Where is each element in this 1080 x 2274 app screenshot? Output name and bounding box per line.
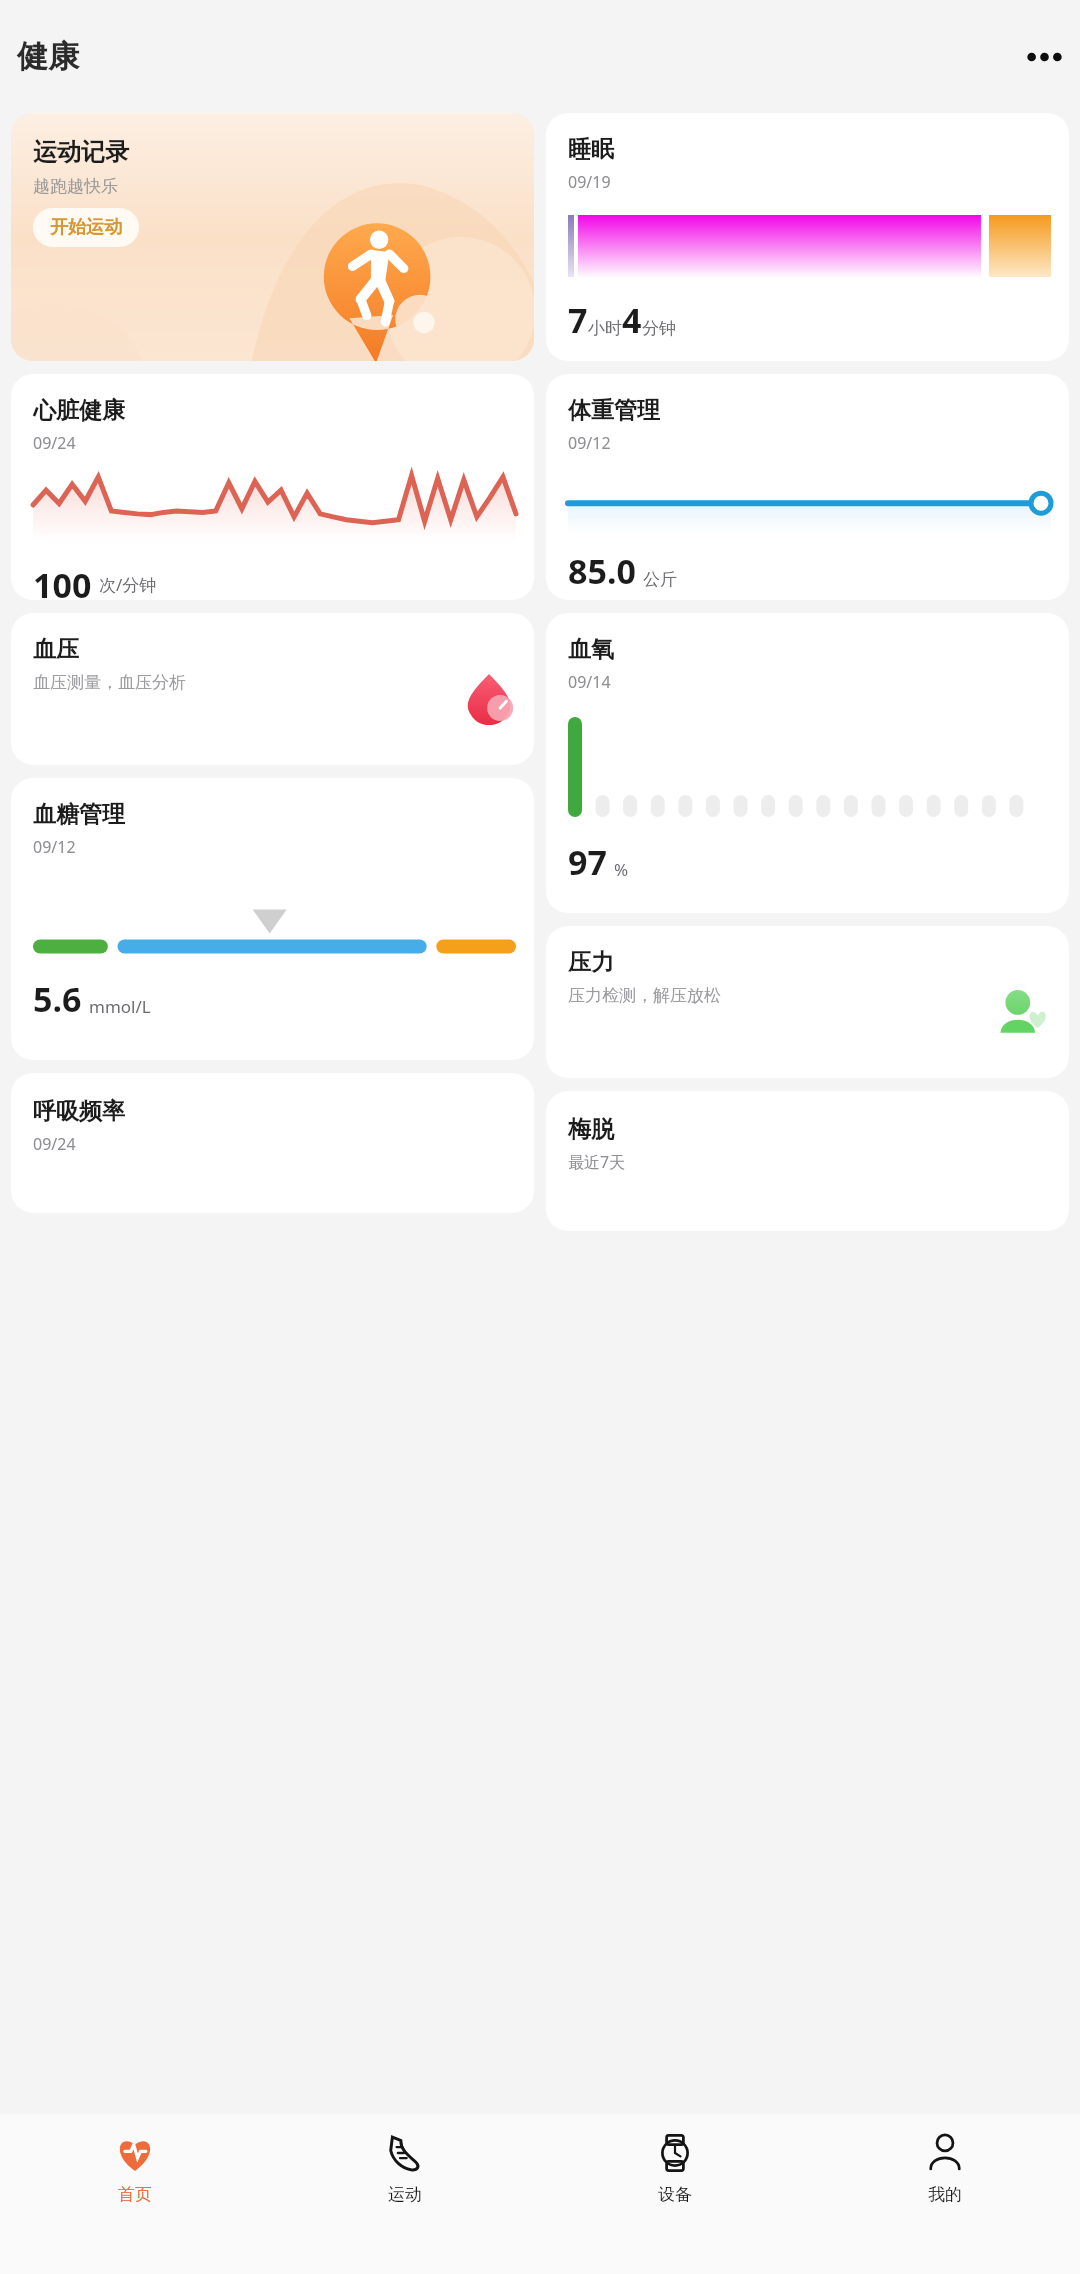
button[interactable]: 血氧 [546, 613, 1069, 913]
button[interactable]: More options [1021, 34, 1067, 80]
button[interactable]: 呼吸频率 [11, 1073, 534, 1213]
staticText: 血糖管理 [33, 800, 125, 829]
staticText: 09/19 [568, 171, 611, 193]
staticText: 压力 [568, 948, 614, 977]
button[interactable]: 压力 [546, 926, 1069, 1078]
button[interactable]: 设备 [540, 2114, 810, 2274]
staticText: 85.0 [568, 548, 636, 594]
staticText: 血压测量，血压分析 [33, 672, 186, 693]
staticText: 血氧 [568, 635, 614, 664]
staticText: 09/12 [568, 432, 611, 454]
button[interactable]: 睡眠 [546, 113, 1069, 361]
staticText: 4 [622, 297, 642, 343]
button[interactable]: 我的 [810, 2114, 1080, 2274]
staticText: 首页 [118, 2184, 152, 2205]
button[interactable]: 心脏健康 [11, 374, 534, 600]
staticText: 公斤 [643, 569, 677, 590]
staticText: 7 [568, 297, 588, 343]
staticText: 呼吸频率 [33, 1097, 125, 1126]
staticText: 5.6 [33, 976, 82, 1022]
staticText: 97 [568, 839, 607, 885]
staticText: 运动 [388, 2184, 422, 2205]
staticText: 分钟 [642, 318, 676, 339]
button[interactable]: 血糖管理 [11, 778, 534, 1060]
button[interactable]: 运动 [270, 2114, 540, 2274]
button[interactable]: 梅脱 [546, 1091, 1069, 1231]
staticText: 设备 [658, 2184, 692, 2205]
staticText: 越跑越快乐 [33, 176, 118, 197]
staticText: 健康 [17, 37, 79, 76]
staticText: 小时 [588, 318, 622, 339]
staticText: 09/12 [33, 836, 76, 858]
button[interactable]: 血压 [11, 613, 534, 765]
staticText: 09/24 [33, 432, 76, 454]
staticText: 血压 [33, 635, 79, 664]
staticText: 运动记录 [33, 137, 129, 167]
staticText: 我的 [928, 2184, 962, 2205]
staticText: 开始运动 [50, 216, 122, 239]
staticText: 最近7天 [568, 1151, 626, 1173]
button[interactable]: 开始运动 [33, 208, 139, 247]
staticText: 09/24 [33, 1133, 76, 1155]
staticText: 09/14 [568, 671, 611, 693]
staticText: 100 [33, 562, 92, 600]
staticText: % [614, 858, 629, 881]
staticText: 压力检测，解压放松 [568, 985, 721, 1006]
button[interactable]: 体重管理 [546, 374, 1069, 600]
staticText: 心脏健康 [33, 396, 125, 425]
staticText: 睡眠 [568, 135, 614, 164]
button[interactable]: 首页 [0, 2114, 270, 2274]
staticText: 次/分钟 [99, 573, 157, 596]
staticText: mmol/L [89, 995, 151, 1018]
staticText: 梅脱 [568, 1115, 614, 1144]
button[interactable]: 运动记录 [11, 113, 534, 361]
staticText: 体重管理 [568, 396, 660, 425]
